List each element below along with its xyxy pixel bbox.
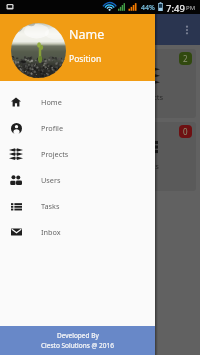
staticText: Developed By	[57, 331, 99, 340]
staticText: Tasks	[41, 201, 60, 211]
staticText: PM	[186, 4, 196, 12]
button[interactable]: Inbox	[0, 219, 155, 245]
staticText: 2	[183, 53, 188, 64]
staticText: Tasks	[140, 161, 159, 171]
staticText: 44%	[141, 3, 155, 13]
staticText: Name	[69, 26, 105, 43]
staticText: Profile	[41, 123, 64, 133]
staticText: Home	[41, 97, 62, 107]
button[interactable]: Tasks	[0, 193, 155, 219]
staticText: Inbox	[41, 227, 61, 237]
button[interactable]: Tasks	[102, 122, 196, 191]
staticText: 0	[183, 126, 188, 137]
staticText: Ciesto Solutions @ 2016	[41, 341, 114, 350]
staticText: Projects	[135, 92, 164, 102]
button[interactable]: Users	[4, 49, 98, 118]
button[interactable]: Home	[0, 89, 155, 115]
staticText: Users	[41, 175, 61, 185]
button[interactable]: Projects	[0, 141, 155, 167]
staticText: Projects	[41, 149, 69, 159]
staticText: Position	[69, 53, 102, 65]
button[interactable]: Inbox	[4, 122, 98, 191]
staticText: 5	[85, 53, 90, 64]
staticText: 7:49	[166, 2, 185, 15]
button[interactable]: More options	[180, 23, 194, 37]
button[interactable]: Projects	[102, 49, 196, 118]
button[interactable]: Profile	[0, 115, 155, 141]
button[interactable]: Users	[0, 167, 155, 193]
